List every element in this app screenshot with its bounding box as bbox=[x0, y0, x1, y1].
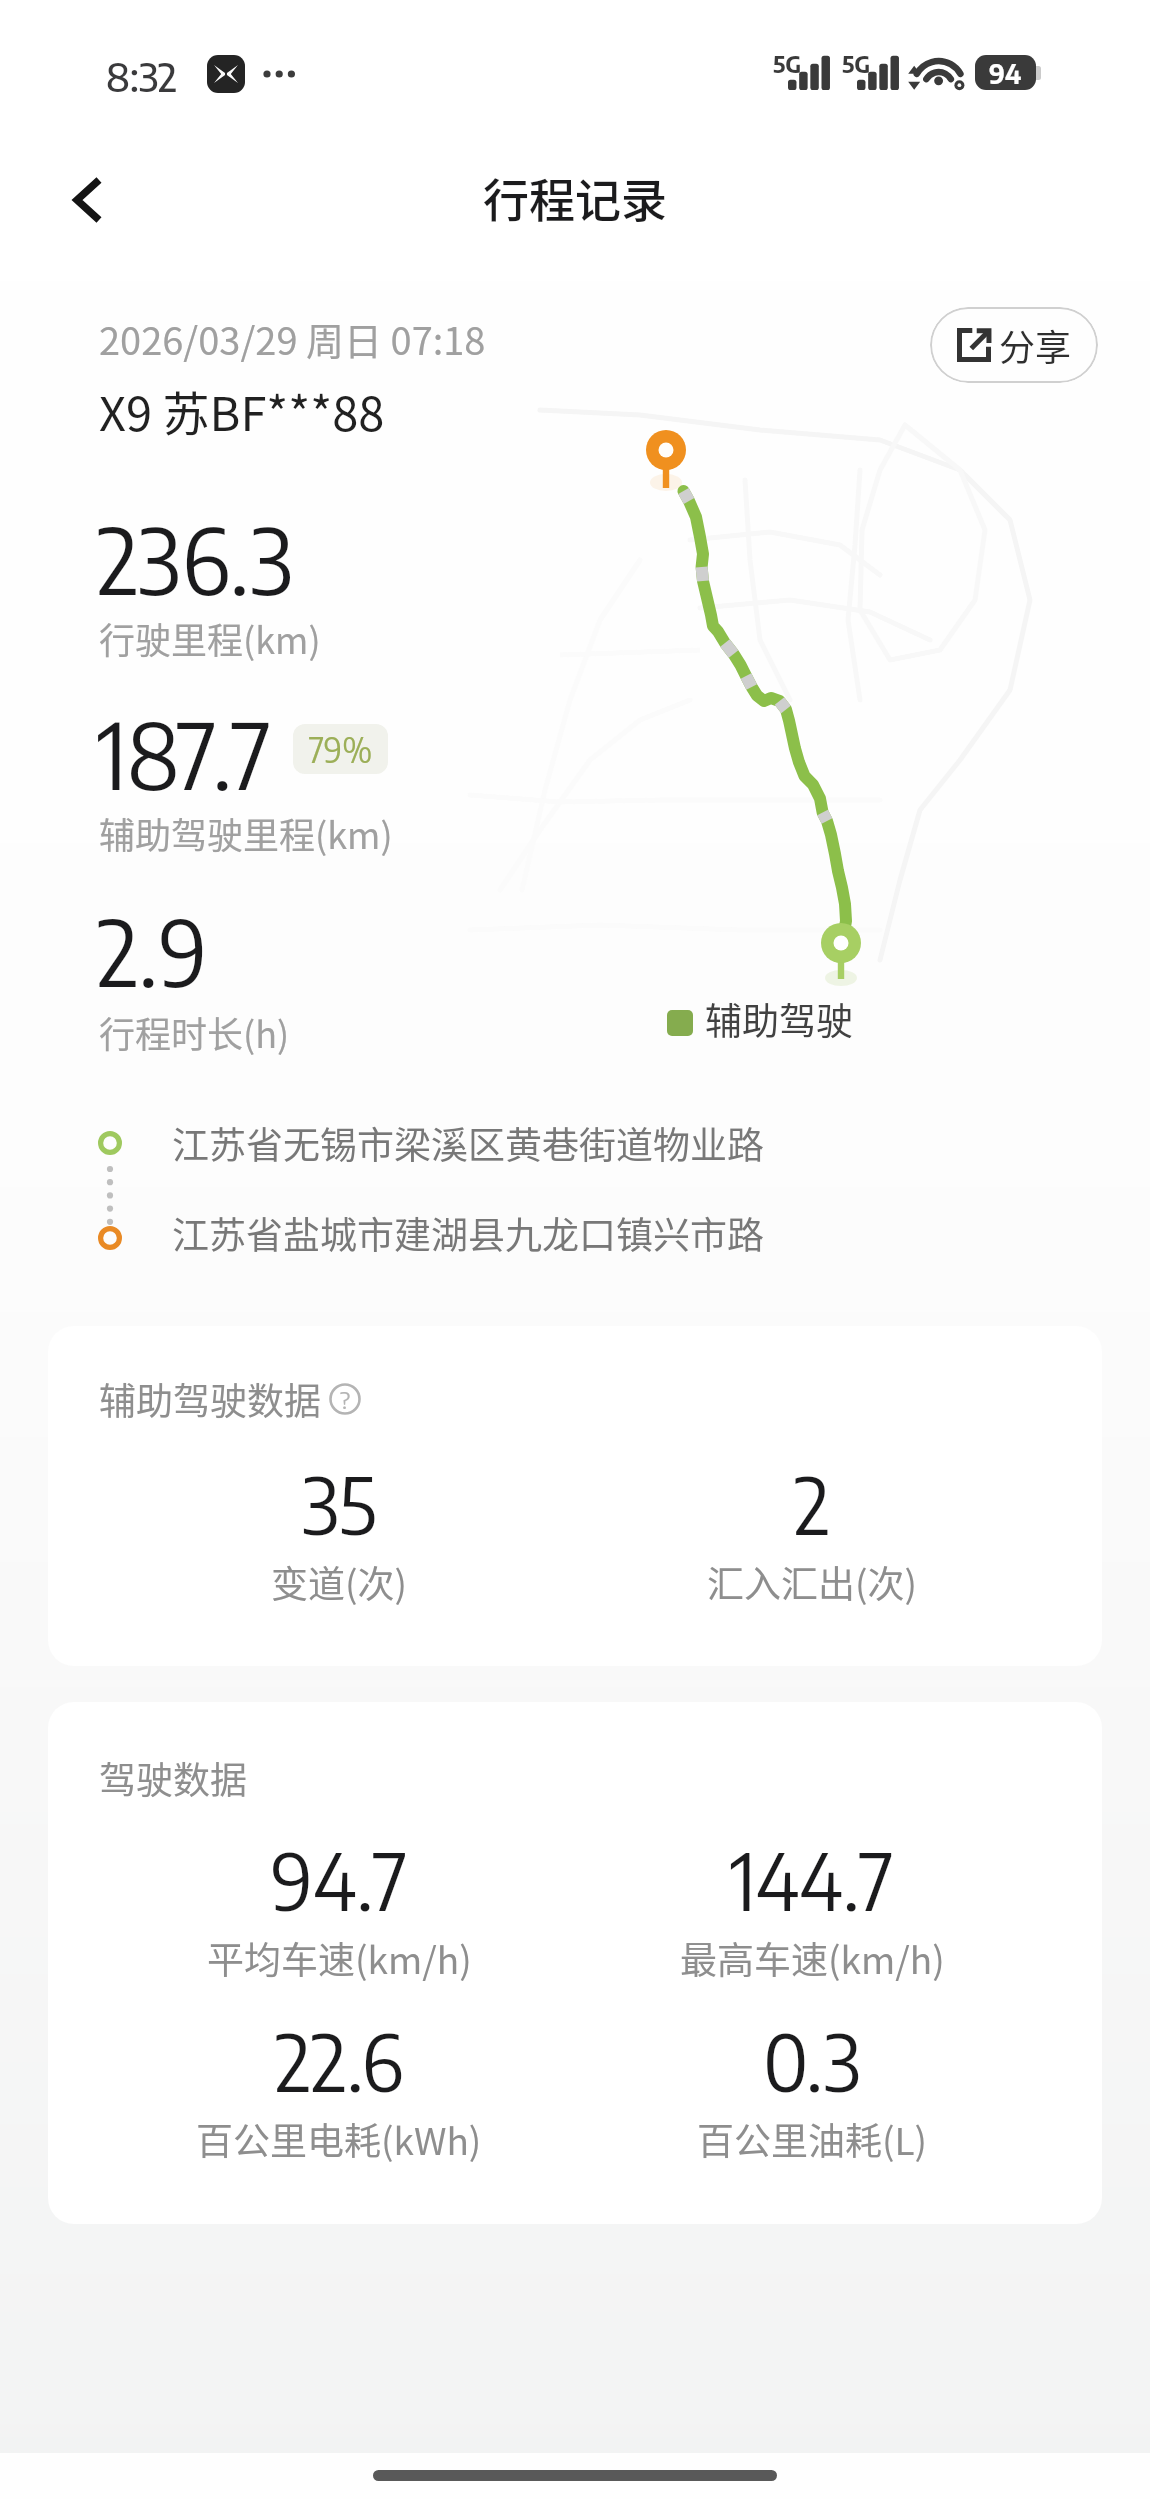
staticText: 驾驶数据 bbox=[99, 1751, 247, 1805]
staticText: 22.6 bbox=[275, 2012, 404, 2109]
staticText: 行程时长(h) bbox=[99, 1006, 290, 1058]
staticText: 百公里电耗(kWh) bbox=[196, 2112, 482, 2166]
staticText: 35 bbox=[302, 1455, 377, 1552]
staticText: 汇入汇出(次) bbox=[707, 1555, 918, 1609]
staticText: 94.7 bbox=[271, 1831, 408, 1928]
staticText: 94 bbox=[989, 56, 1022, 90]
staticText: 行程记录 bbox=[483, 164, 667, 231]
staticText: 辅助驾驶 bbox=[705, 992, 853, 1046]
staticText: 5G bbox=[842, 48, 871, 78]
staticText: 行驶里程(km) bbox=[99, 612, 321, 664]
staticText: 百公里油耗(L) bbox=[697, 2112, 928, 2166]
staticText: 平均车速(km/h) bbox=[207, 1931, 472, 1985]
staticText: 江苏省盐城市建湖县九龙口镇兴市路 bbox=[172, 1206, 764, 1260]
staticText: 2026/03/29 周日 07:18 bbox=[99, 311, 486, 366]
button[interactable]: 江苏省盐城市建湖县九龙口镇兴市路 bbox=[80, 1198, 800, 1268]
staticText: 144.7 bbox=[730, 1831, 894, 1928]
button[interactable]: Trip route map bbox=[460, 400, 1102, 1020]
button[interactable]: Back bbox=[48, 160, 128, 240]
staticText: 187.7 bbox=[97, 697, 271, 809]
staticText: 辅助驾驶数据 bbox=[99, 1372, 321, 1426]
staticText: 79% bbox=[309, 728, 373, 771]
staticText: 8:32 bbox=[106, 51, 177, 101]
button[interactable]: 江苏省无锡市梁溪区黄巷街道物业路 bbox=[80, 1108, 800, 1178]
button[interactable]: About assisted-driving data bbox=[329, 1383, 361, 1415]
staticText: 2 bbox=[794, 1455, 830, 1552]
staticText: 2.9 bbox=[97, 894, 208, 1006]
button[interactable]: Share trip bbox=[930, 307, 1098, 383]
staticText: 236.3 bbox=[97, 502, 294, 614]
staticText: 辅助驾驶里程(km) bbox=[99, 807, 393, 859]
staticText: 江苏省无锡市梁溪区黄巷街道物业路 bbox=[172, 1116, 764, 1170]
staticText: 最高车速(km/h) bbox=[680, 1931, 945, 1985]
staticText: 分享 bbox=[999, 319, 1072, 371]
staticText: 变道(次) bbox=[271, 1555, 408, 1609]
staticText: ? bbox=[340, 1384, 351, 1414]
staticText: 0.3 bbox=[763, 2012, 861, 2109]
staticText: X9 苏BF***88 bbox=[99, 376, 385, 444]
staticText: 5G bbox=[773, 48, 802, 78]
